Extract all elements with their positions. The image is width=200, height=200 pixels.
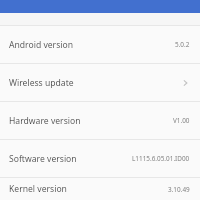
staticText: Software version <box>9 153 77 165</box>
button[interactable]: Software version <box>0 140 200 177</box>
staticText: 5.0.2 <box>175 40 190 49</box>
button[interactable]: Hardware version <box>0 102 200 139</box>
staticText: 3.10.49 <box>168 185 190 194</box>
staticText: V1.00 <box>173 116 190 125</box>
staticText: Kernel version <box>9 183 67 195</box>
staticText: L1115.6.05.01.ID00 <box>132 154 190 163</box>
button[interactable]: Android version <box>0 26 200 63</box>
button[interactable]: Wireless update <box>0 64 200 101</box>
other: Open wireless update <box>180 78 190 88</box>
staticText: Android version <box>9 39 74 51</box>
staticText: Wireless update <box>9 77 74 89</box>
staticText: Hardware version <box>9 115 81 127</box>
button[interactable]: Kernel version <box>0 178 200 200</box>
